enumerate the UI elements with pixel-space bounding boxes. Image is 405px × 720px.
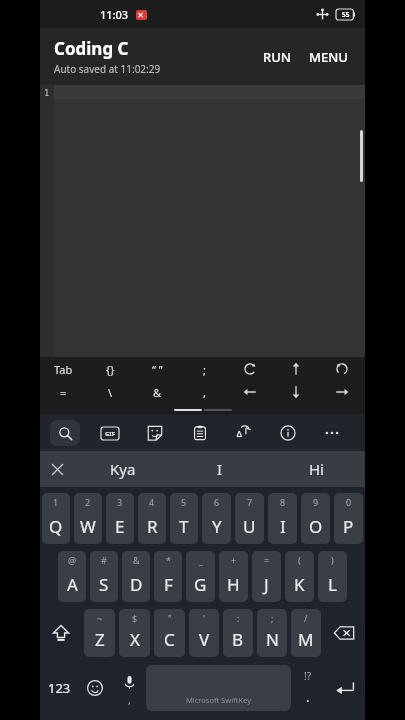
button[interactable]: 5 bbox=[170, 493, 198, 544]
button[interactable]: Move up bbox=[273, 357, 319, 381]
button[interactable]: More bbox=[317, 418, 347, 448]
button[interactable]: 3 bbox=[106, 493, 134, 544]
staticText: 9 bbox=[313, 496, 319, 508]
staticText: Kya bbox=[110, 459, 136, 479]
button[interactable]: Space bbox=[146, 665, 291, 711]
button[interactable]: @ bbox=[58, 551, 86, 602]
staticText: . bbox=[306, 688, 310, 706]
staticText: 5 bbox=[181, 496, 187, 508]
staticText: ' bbox=[203, 612, 206, 624]
button[interactable]: _ bbox=[186, 551, 215, 602]
button[interactable]: & bbox=[122, 551, 150, 602]
button[interactable]: GIF bbox=[95, 418, 125, 448]
staticText: " bbox=[168, 612, 172, 624]
button[interactable]: ) bbox=[318, 551, 347, 602]
button[interactable]: # bbox=[90, 551, 118, 602]
button[interactable]: $ bbox=[119, 609, 150, 657]
staticText: 4 bbox=[149, 496, 155, 508]
button[interactable]: !? bbox=[291, 662, 325, 714]
staticText: 1 bbox=[53, 496, 59, 508]
button[interactable]: Move left bbox=[227, 381, 273, 403]
button[interactable]: Translate bbox=[229, 418, 259, 448]
button[interactable]: 6 bbox=[202, 493, 231, 544]
staticText: & bbox=[153, 385, 162, 400]
staticText: W bbox=[80, 515, 96, 538]
staticText: ; bbox=[203, 362, 206, 377]
button[interactable]: = bbox=[40, 381, 87, 403]
staticText: ; bbox=[271, 612, 274, 624]
staticText: & bbox=[133, 554, 140, 566]
staticText: 123 bbox=[48, 679, 71, 697]
button[interactable]: Search bbox=[50, 420, 80, 446]
button[interactable]: Backspace bbox=[326, 610, 362, 656]
button[interactable]: “ ” bbox=[134, 357, 181, 381]
staticText: T bbox=[179, 515, 189, 538]
button[interactable]: & bbox=[134, 381, 181, 403]
button[interactable]: 8 bbox=[268, 493, 297, 544]
button[interactable]: 7 bbox=[235, 493, 264, 544]
other: Undo bbox=[243, 362, 257, 376]
button[interactable]: Info bbox=[273, 418, 303, 448]
staticText: 8 bbox=[280, 496, 286, 508]
button[interactable]: Tab bbox=[40, 357, 87, 381]
button[interactable]: ; bbox=[257, 609, 287, 657]
button[interactable]: ; bbox=[181, 357, 227, 381]
staticText: 6 bbox=[214, 496, 220, 508]
button[interactable]: Clipboard bbox=[185, 418, 215, 448]
button[interactable]: : bbox=[223, 609, 253, 657]
staticText: Z bbox=[95, 628, 105, 651]
staticText: @ bbox=[68, 554, 77, 566]
button[interactable]: ( bbox=[285, 551, 314, 602]
staticText: GIF bbox=[105, 430, 115, 438]
button[interactable]: Emoji bbox=[78, 662, 112, 714]
button[interactable]: Close suggestions bbox=[40, 451, 74, 487]
staticText: O bbox=[309, 515, 323, 538]
staticText: !? bbox=[304, 669, 312, 683]
button[interactable]: " bbox=[154, 609, 185, 657]
button[interactable]: Redo bbox=[319, 357, 365, 381]
button[interactable]: Kya bbox=[74, 451, 171, 487]
staticText: P bbox=[343, 515, 354, 538]
button[interactable]: , bbox=[181, 381, 227, 403]
staticText: {} bbox=[106, 362, 115, 377]
staticText: L bbox=[328, 573, 337, 596]
button[interactable]: MENU bbox=[300, 42, 357, 72]
button[interactable]: 0 bbox=[334, 493, 363, 544]
button[interactable]: / bbox=[291, 609, 321, 657]
staticText: K bbox=[294, 573, 305, 596]
button[interactable]: Voice input bbox=[112, 662, 146, 714]
button[interactable]: ~ bbox=[84, 609, 115, 657]
staticText: X bbox=[130, 628, 140, 651]
button[interactable]: Move right bbox=[319, 381, 365, 403]
button[interactable]: Move down bbox=[273, 381, 319, 403]
button[interactable]: Shift bbox=[43, 610, 79, 656]
button[interactable]: Enter bbox=[325, 662, 365, 714]
staticText: \ bbox=[108, 385, 113, 400]
button[interactable]: Undo bbox=[227, 357, 273, 381]
staticText: 55 bbox=[342, 10, 350, 19]
button[interactable]: ' bbox=[189, 609, 219, 657]
button[interactable]: I bbox=[171, 451, 268, 487]
other: Move left bbox=[243, 385, 257, 399]
staticText: J bbox=[264, 573, 269, 596]
button[interactable]: Sticker bbox=[140, 418, 170, 448]
button[interactable]: 4 bbox=[138, 493, 166, 544]
button[interactable]: \ bbox=[87, 381, 134, 403]
staticText: RUN bbox=[263, 48, 291, 66]
staticText: ( bbox=[298, 554, 301, 566]
button[interactable]: Hi bbox=[268, 451, 365, 487]
button[interactable]: {} bbox=[87, 357, 134, 381]
staticText: “ ” bbox=[152, 362, 163, 377]
staticText: 7 bbox=[247, 496, 253, 508]
staticText: M bbox=[298, 628, 314, 651]
button[interactable]: 2 bbox=[74, 493, 102, 544]
button[interactable]: 123 bbox=[40, 662, 78, 714]
button[interactable]: * bbox=[154, 551, 182, 602]
button[interactable]: + bbox=[219, 551, 248, 602]
button[interactable]: 1 bbox=[42, 493, 70, 544]
button[interactable]: 9 bbox=[301, 493, 330, 544]
button[interactable]: RUN bbox=[254, 42, 300, 72]
staticText: A bbox=[67, 573, 78, 596]
button[interactable]: = bbox=[252, 551, 281, 602]
staticText: Microsoft SwiftKey bbox=[186, 695, 251, 705]
